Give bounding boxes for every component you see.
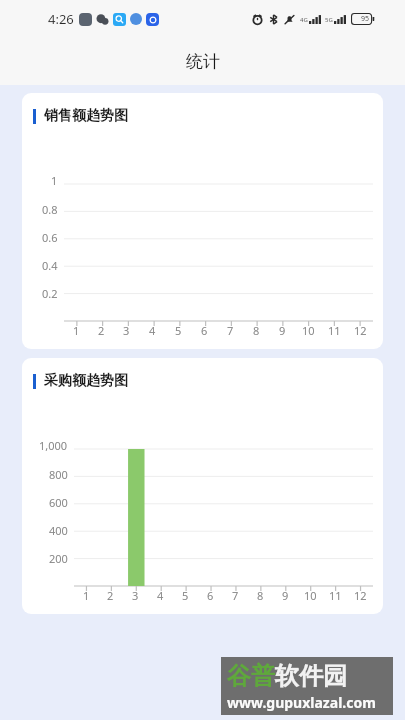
staticText: 400 [49, 523, 68, 538]
staticText: 4 [149, 323, 156, 338]
staticText: 95 [361, 14, 370, 24]
staticText: 谷普 [227, 661, 275, 691]
staticText: 5G [325, 16, 333, 24]
staticText: 11 [328, 323, 341, 338]
staticText: 4:26 [48, 10, 74, 28]
staticText: 11 [329, 588, 342, 603]
staticText: 0.8 [42, 202, 58, 217]
staticText: www.gupuxlazal.com [227, 693, 376, 711]
staticText: 9 [282, 588, 289, 603]
button[interactable]: 销售额趋势图 [22, 93, 383, 349]
staticText: 9 [279, 323, 286, 338]
staticText: 2 [98, 323, 105, 338]
staticText: 统计 [186, 51, 220, 72]
staticText: 12 [354, 323, 367, 338]
staticText: 10 [304, 588, 317, 603]
button[interactable]: 采购额趋势图 [22, 358, 383, 614]
staticText: 6 [201, 323, 208, 338]
staticText: 12 [354, 588, 367, 603]
staticText: 2 [107, 588, 114, 603]
staticText: 1 [73, 323, 80, 338]
staticText: 5 [182, 588, 189, 603]
staticText: 销售额趋势图 [44, 107, 128, 125]
staticText: 1,000 [39, 438, 68, 453]
staticText: 1 [83, 588, 90, 603]
staticText: 7 [232, 588, 239, 603]
staticText: 3 [132, 588, 139, 603]
staticText: 4 [157, 588, 164, 603]
staticText: 10 [302, 323, 315, 338]
staticText: 8 [257, 588, 264, 603]
staticText: 0.4 [42, 258, 58, 273]
staticText: 6 [207, 588, 214, 603]
staticText: 7 [227, 323, 234, 338]
staticText: 600 [49, 495, 68, 510]
staticText: 200 [49, 551, 68, 566]
staticText: 3 [123, 323, 130, 338]
staticText: 1 [51, 173, 58, 188]
staticText: 采购额趋势图 [44, 372, 128, 390]
staticText: 软件园 [275, 661, 347, 691]
staticText: 5 [175, 323, 182, 338]
staticText: 0.6 [42, 230, 58, 245]
staticText: 0.2 [42, 286, 58, 301]
staticText: 4G [300, 16, 308, 24]
staticText: 800 [49, 467, 68, 482]
staticText: 8 [253, 323, 260, 338]
